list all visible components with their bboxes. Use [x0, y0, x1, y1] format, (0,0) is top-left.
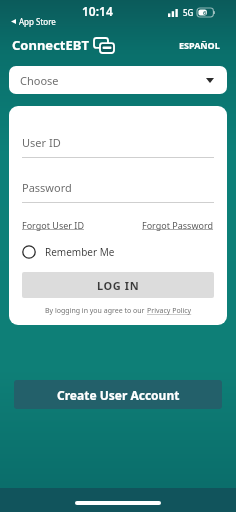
staticText: Remember Me	[45, 245, 115, 259]
button[interactable]: ESPAÑOL	[175, 35, 224, 55]
button[interactable]: Password	[22, 180, 214, 203]
button[interactable]: Forgot Password	[142, 216, 214, 234]
button[interactable]: Privacy Policy	[147, 306, 192, 316]
button[interactable]: Choose	[9, 66, 227, 94]
staticText: ESPAÑOL	[179, 39, 220, 51]
staticText: Choose	[20, 73, 59, 88]
staticText: ConnectEBT	[12, 36, 89, 54]
staticText: 62	[203, 9, 210, 17]
staticText: 5G	[183, 7, 194, 18]
staticText: Create User Account	[57, 387, 180, 403]
staticText: By logging in you agree to our	[45, 306, 147, 316]
staticText: LOG IN	[97, 278, 140, 293]
other: Home indicator	[75, 501, 161, 505]
button[interactable]: User ID	[22, 135, 214, 158]
staticText: App Store	[19, 16, 56, 27]
staticText: Forgot User ID	[22, 219, 84, 231]
button[interactable]: ConnectEBT	[12, 34, 114, 56]
staticText: 10:14	[82, 3, 113, 19]
button[interactable]: Forgot User ID	[22, 216, 84, 234]
staticText: Privacy Policy	[147, 306, 192, 316]
button[interactable]: Remember Me	[22, 243, 115, 261]
staticText: Password	[22, 180, 72, 195]
staticText: Forgot Password	[142, 219, 214, 231]
button[interactable]: Create User Account	[14, 380, 222, 409]
staticText: User ID	[22, 135, 61, 150]
button[interactable]: LOG IN	[22, 272, 214, 298]
